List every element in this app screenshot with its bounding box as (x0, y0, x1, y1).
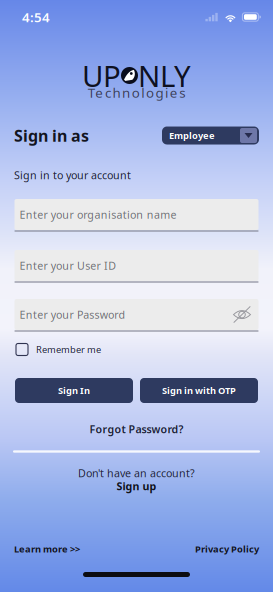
staticText: Sign up (116, 479, 156, 493)
button[interactable]: Learn more >> (14, 543, 80, 555)
staticText: Enter your organisation name (19, 207, 176, 222)
staticText: Learn more >> (14, 543, 80, 555)
staticText: Forgot Password? (89, 422, 183, 436)
staticText: Privacy Policy (195, 543, 259, 555)
button[interactable]: Remember me (16, 343, 101, 356)
staticText: Don't have an account? (78, 466, 195, 480)
staticText: UP (82, 56, 121, 95)
staticText: Employee (169, 129, 215, 142)
button[interactable]: Sign in with OTP (140, 378, 258, 403)
button[interactable]: Sign In (15, 378, 133, 403)
staticText: Remember me (36, 343, 101, 356)
button[interactable]: Privacy Policy (195, 543, 259, 555)
button[interactable]: Sign up (110, 480, 162, 492)
staticText: NLY (138, 56, 191, 95)
staticText: Technologies (88, 84, 185, 101)
staticText: Enter your User ID (19, 258, 116, 273)
staticText: Sign in to your account (14, 168, 131, 182)
button[interactable]: Employee (162, 126, 259, 144)
staticText: Sign In (58, 384, 90, 397)
staticText: Sign in with OTP (162, 384, 236, 397)
staticText: 4:54 (22, 8, 50, 26)
button[interactable]: Forgot Password? (89, 422, 183, 436)
staticText: Sign in as (14, 125, 89, 146)
staticText: Enter your Password (19, 307, 125, 322)
